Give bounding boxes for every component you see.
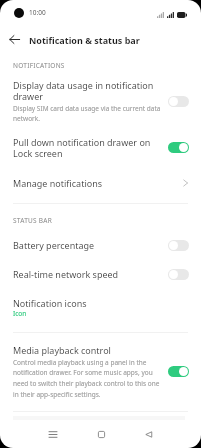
staticText: Media playback control — [13, 344, 111, 356]
button[interactable]: Back — [0, 25, 29, 54]
button[interactable]: Media playback control — [0, 344, 201, 399]
button[interactable]: Battery percentage — [0, 239, 201, 251]
staticText: 10:00 — [29, 8, 46, 17]
staticText: Battery percentage — [13, 239, 95, 251]
staticText: Notification & status bar — [29, 34, 140, 46]
button[interactable]: Real-time network speed — [0, 268, 201, 280]
button[interactable]: Home — [89, 423, 113, 445]
button[interactable]: Toggle — [168, 240, 189, 251]
button[interactable]: Display data usage in notification drawe… — [0, 79, 201, 123]
button[interactable]: Toggle — [168, 142, 189, 153]
staticText: Display data usage in notification drawe… — [13, 79, 163, 102]
staticText: STATUS BAR — [13, 216, 52, 225]
staticText: Real-time network speed — [13, 268, 119, 280]
button[interactable]: Recents — [41, 423, 65, 445]
staticText: Icon — [13, 309, 27, 318]
button[interactable]: Manage notifications — [0, 177, 201, 189]
staticText: NOTIFICATIONS — [13, 61, 65, 70]
staticText: Display SIM card data usage via the curr… — [13, 104, 163, 123]
button[interactable]: Toggle — [168, 366, 189, 377]
staticText: Notification icons — [13, 297, 87, 309]
button[interactable]: Notification icons — [0, 297, 201, 318]
staticText: Control media playback using a panel in … — [13, 358, 163, 399]
staticText: Pull down notification drawer on Lock sc… — [13, 136, 163, 159]
button[interactable]: Toggle — [168, 96, 189, 107]
button[interactable]: Back — [136, 423, 160, 445]
button[interactable]: Pull down notification drawer on Lock sc… — [0, 136, 201, 159]
button[interactable]: Toggle — [168, 269, 189, 280]
staticText: Manage notifications — [13, 177, 103, 189]
